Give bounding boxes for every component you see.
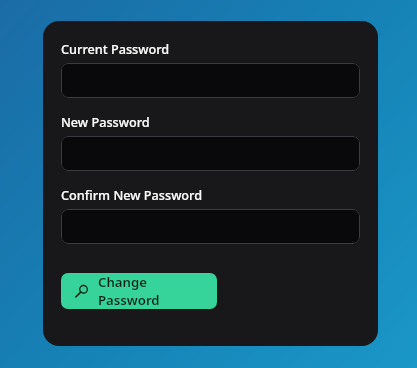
staticText: New Password — [61, 113, 150, 130]
button[interactable] — [61, 63, 360, 98]
button[interactable] — [61, 136, 360, 171]
staticText: Current Password — [61, 40, 170, 57]
button[interactable] — [61, 209, 360, 244]
staticText: Confirm New Password — [61, 186, 203, 203]
staticText: Change Password — [98, 273, 204, 309]
button[interactable]: Change Password — [61, 273, 217, 309]
